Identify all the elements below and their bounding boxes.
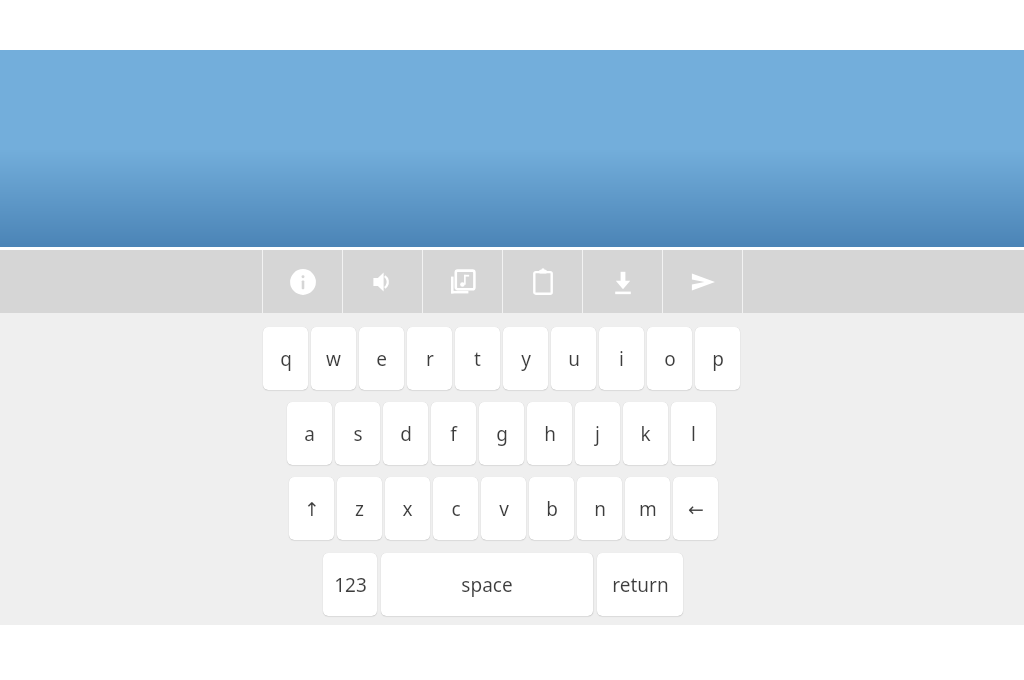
button[interactable]: Clipboard bbox=[503, 250, 582, 313]
button[interactable]: o bbox=[647, 327, 692, 390]
staticText: i bbox=[619, 346, 624, 372]
button[interactable]: Info bbox=[263, 250, 342, 313]
button[interactable]: s bbox=[335, 402, 380, 465]
button[interactable]: z bbox=[337, 477, 382, 540]
button[interactable]: v bbox=[481, 477, 526, 540]
button[interactable]: e bbox=[359, 327, 404, 390]
staticText: ← bbox=[688, 498, 704, 520]
staticText: d bbox=[400, 421, 412, 447]
staticText: s bbox=[353, 421, 363, 447]
staticText: p bbox=[712, 346, 724, 372]
staticText: g bbox=[496, 421, 508, 447]
staticText: 123 bbox=[334, 572, 367, 598]
staticText: c bbox=[451, 496, 461, 522]
button[interactable]: g bbox=[479, 402, 524, 465]
button[interactable]: 123 bbox=[323, 553, 377, 616]
button[interactable]: t bbox=[455, 327, 500, 390]
button[interactable]: f bbox=[431, 402, 476, 465]
button[interactable]: a bbox=[287, 402, 332, 465]
button[interactable]: return bbox=[597, 553, 683, 616]
staticText: j bbox=[595, 421, 600, 447]
button[interactable]: r bbox=[407, 327, 452, 390]
button[interactable]: j bbox=[575, 402, 620, 465]
staticText: o bbox=[664, 346, 676, 372]
staticText: w bbox=[326, 346, 341, 372]
button[interactable]: m bbox=[625, 477, 670, 540]
button[interactable]: w bbox=[311, 327, 356, 390]
staticText: e bbox=[376, 346, 387, 372]
staticText: r bbox=[426, 346, 434, 372]
staticText: v bbox=[499, 496, 509, 522]
button[interactable]: Send bbox=[663, 250, 742, 313]
button[interactable]: b bbox=[529, 477, 574, 540]
staticText: a bbox=[304, 421, 315, 447]
button[interactable]: Volume bbox=[343, 250, 422, 313]
staticText: q bbox=[280, 346, 292, 372]
staticText: x bbox=[402, 496, 413, 522]
button[interactable]: n bbox=[577, 477, 622, 540]
button[interactable]: i bbox=[599, 327, 644, 390]
button[interactable]: y bbox=[503, 327, 548, 390]
button[interactable]: Download bbox=[583, 250, 662, 313]
staticText: m bbox=[639, 496, 657, 522]
button[interactable]: d bbox=[383, 402, 428, 465]
staticText: z bbox=[355, 496, 364, 522]
button[interactable]: x bbox=[385, 477, 430, 540]
staticText: h bbox=[544, 421, 556, 447]
button[interactable]: c bbox=[433, 477, 478, 540]
staticText: k bbox=[640, 421, 651, 447]
button[interactable]: h bbox=[527, 402, 572, 465]
button[interactable]: k bbox=[623, 402, 668, 465]
button[interactable]: space bbox=[381, 553, 593, 616]
staticText: space bbox=[461, 572, 513, 598]
staticText: l bbox=[691, 421, 696, 447]
button[interactable]: u bbox=[551, 327, 596, 390]
button[interactable]: p bbox=[695, 327, 740, 390]
button[interactable]: q bbox=[263, 327, 308, 390]
staticText: return bbox=[612, 572, 669, 598]
button[interactable]: Music library bbox=[423, 250, 502, 313]
staticText: n bbox=[594, 496, 606, 522]
staticText: u bbox=[568, 346, 580, 372]
button[interactable]: ← bbox=[673, 477, 718, 540]
staticText: f bbox=[450, 421, 457, 447]
staticText: y bbox=[521, 346, 531, 372]
staticText: ↑ bbox=[304, 498, 320, 520]
button[interactable]: l bbox=[671, 402, 716, 465]
staticText: t bbox=[474, 346, 481, 372]
staticText: b bbox=[546, 496, 558, 522]
button[interactable]: ↑ bbox=[289, 477, 334, 540]
